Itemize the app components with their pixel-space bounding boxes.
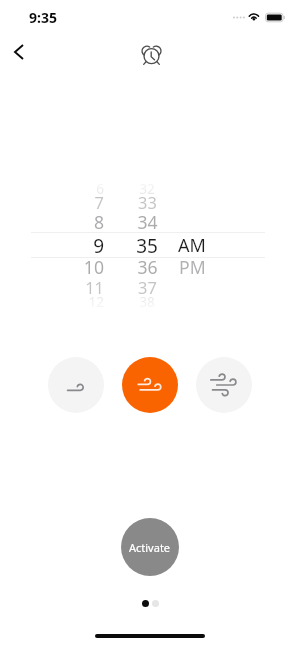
staticText: 38 — [139, 292, 155, 311]
staticText: 10 — [83, 255, 104, 279]
staticText: 37 — [138, 276, 157, 298]
button[interactable]: Alarm — [133, 36, 169, 72]
button[interactable]: Activate — [121, 518, 179, 576]
staticText: 6 — [96, 179, 104, 198]
button[interactable]: Wind speed level 3 — [196, 357, 252, 413]
button[interactable]: Wind speed level 2 — [122, 357, 178, 413]
staticText: 36 — [137, 255, 158, 279]
staticText: 11 — [85, 276, 104, 298]
staticText: PM — [179, 255, 206, 279]
staticText: 35 — [136, 233, 158, 257]
staticText: 9 — [93, 233, 104, 257]
button[interactable]: Back — [0, 33, 38, 71]
staticText: 8 — [93, 210, 104, 234]
staticText: 12 — [88, 292, 104, 311]
staticText: 7 — [94, 191, 104, 213]
staticText: Activate — [129, 540, 171, 555]
button[interactable]: Wind speed level 1 — [48, 357, 104, 413]
staticText: 32 — [139, 179, 155, 198]
staticText: 33 — [138, 191, 157, 213]
staticText: AM — [178, 233, 206, 257]
staticText: 34 — [137, 210, 158, 234]
staticText: 9:35 — [29, 8, 57, 27]
